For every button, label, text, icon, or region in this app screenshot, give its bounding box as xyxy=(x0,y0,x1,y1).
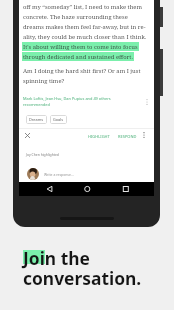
staticText: through dedicated and sustained effort. xyxy=(23,53,133,61)
staticText: conversation. xyxy=(23,266,142,290)
staticText: off my “someday” list, I need to make th… xyxy=(23,3,143,11)
staticText: dreams makes them feel far-away, but in … xyxy=(23,23,146,31)
button[interactable]: More options xyxy=(139,130,149,140)
button[interactable]: Dreams xyxy=(26,115,47,124)
staticText: HIGHLIGHT xyxy=(88,134,110,139)
staticText: Join the xyxy=(23,246,90,270)
staticText: recommended xyxy=(23,102,50,107)
button[interactable]: RESPOND xyxy=(117,131,138,142)
button[interactable]: Write a response... xyxy=(27,168,74,180)
staticText: spinning time? xyxy=(23,77,65,85)
staticText: Joy Chen highlighted xyxy=(26,152,59,157)
staticText: Dreams xyxy=(29,117,44,122)
button[interactable]: Post options xyxy=(142,97,152,107)
staticText: Goals xyxy=(53,117,64,122)
button[interactable]: Goals xyxy=(50,115,67,124)
staticText: ality, they could be much closer than I … xyxy=(23,33,147,41)
staticText: Am I doing the hard shit first? Or am I … xyxy=(23,67,141,75)
button[interactable]: Close xyxy=(22,130,33,141)
staticText: Write a response... xyxy=(44,172,74,177)
staticText: It's about willing them to come into foc… xyxy=(23,43,138,51)
staticText: RESPOND xyxy=(118,134,137,139)
staticText: concrete. The haze surrounding these xyxy=(23,13,128,21)
staticText: Mark Loftis, Jean Hsu, Dan Pupius and 49… xyxy=(23,96,111,101)
button[interactable]: HIGHLIGHT xyxy=(87,131,111,142)
